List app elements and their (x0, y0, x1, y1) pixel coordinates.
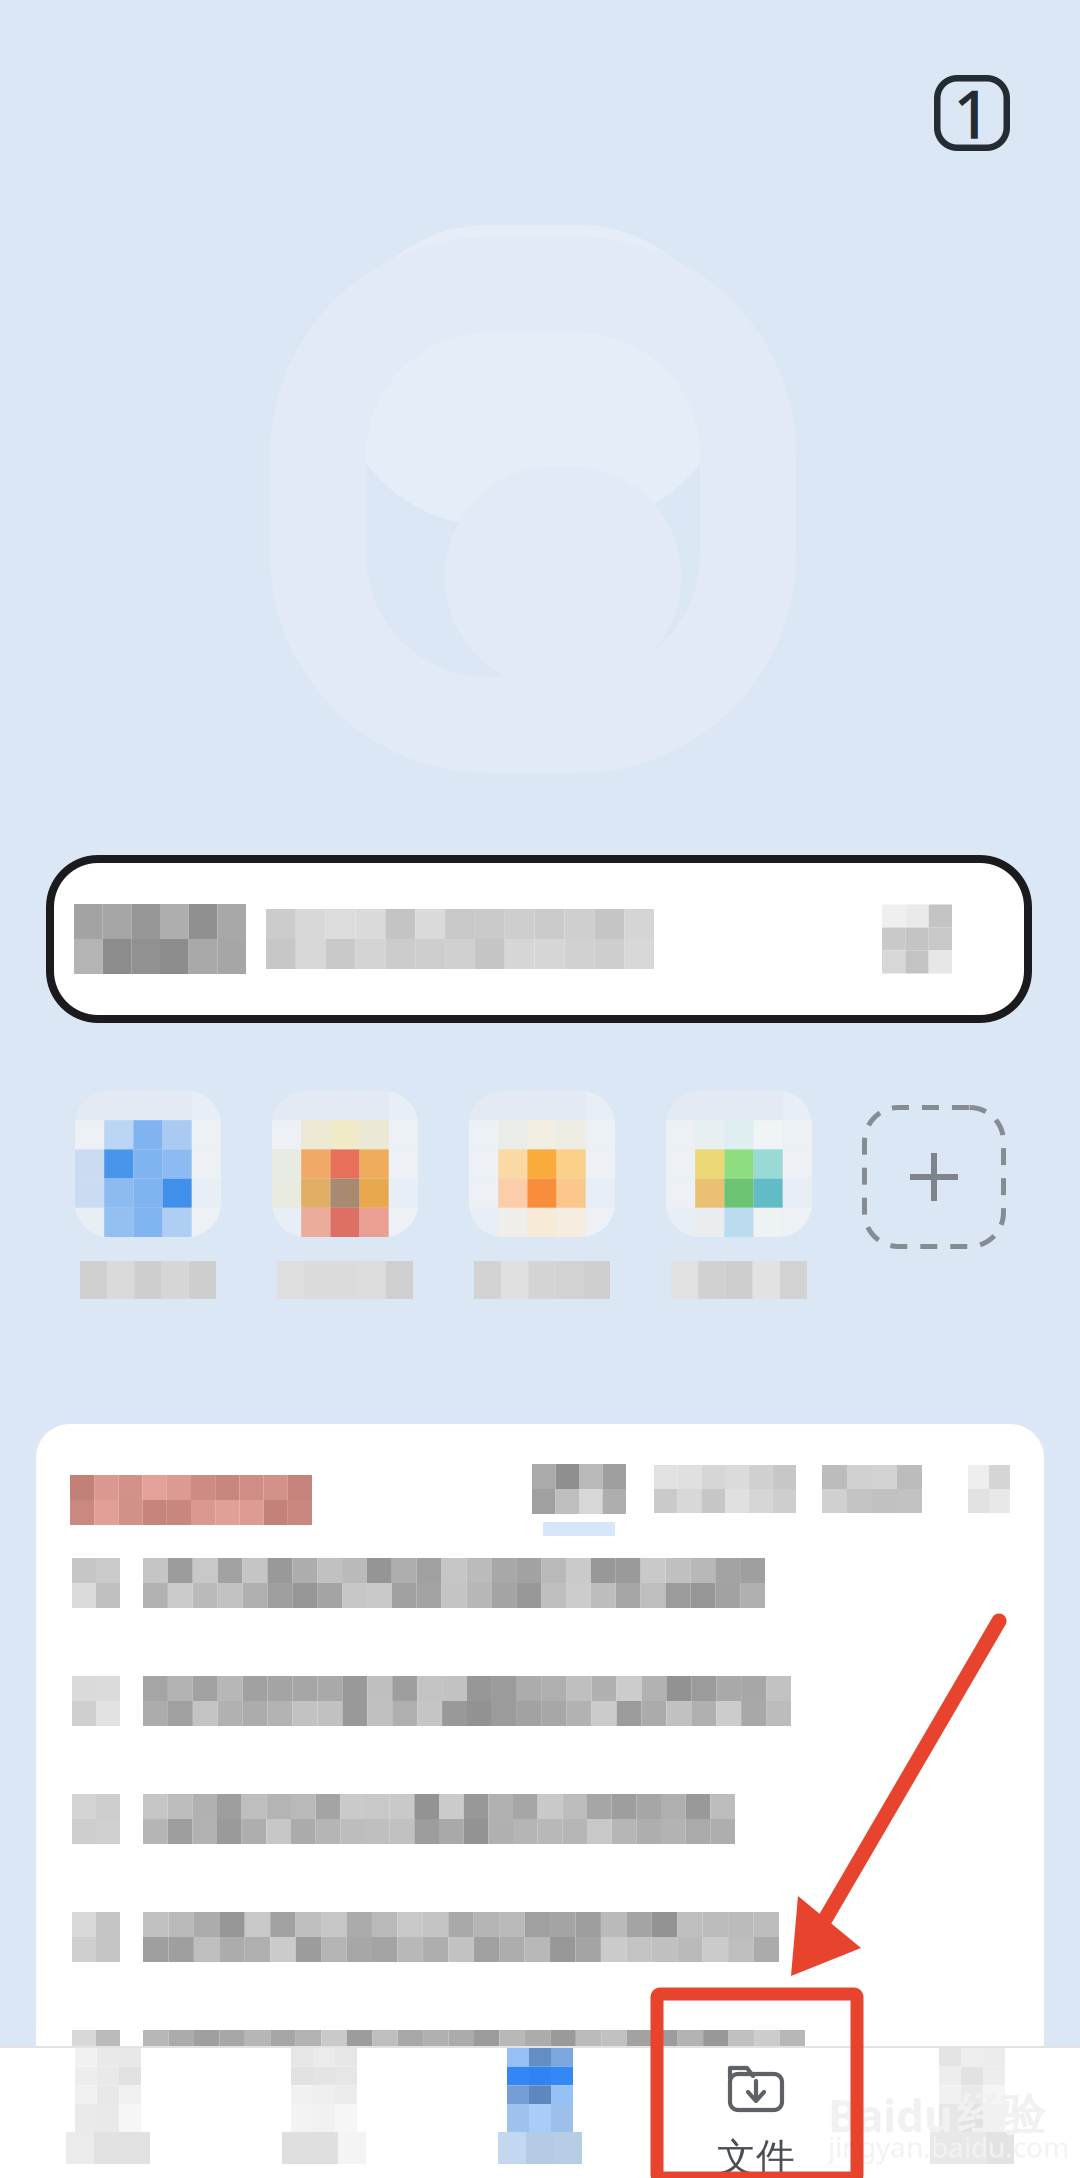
staticText: jingyan.baidu.com (828, 2128, 1069, 2165)
button[interactable]: Tab (0, 2048, 216, 2178)
button[interactable]: Tab (216, 2048, 432, 2178)
staticText: Baidu (828, 2086, 953, 2144)
button[interactable]: File row (36, 2030, 1044, 2080)
button[interactable]: Tab (864, 2048, 1080, 2178)
button[interactable]: File row (36, 1912, 1044, 1962)
button[interactable]: App shortcut (272, 1091, 469, 1299)
button[interactable]: File row (36, 1676, 1044, 1726)
staticText: 文件 (717, 2134, 795, 2178)
button[interactable]: Search (50, 859, 1028, 1019)
button[interactable]: App shortcut (666, 1091, 863, 1299)
button[interactable]: App shortcut (469, 1091, 666, 1299)
button[interactable]: 文件 (648, 2048, 864, 2178)
button[interactable]: Add shortcut (871, 1123, 1015, 1267)
button[interactable]: File row (36, 1794, 1044, 1844)
staticText: 经验 (957, 2088, 1045, 2142)
button[interactable]: Tab (432, 2048, 648, 2178)
button[interactable]: App shortcut (75, 1091, 272, 1299)
staticText: 1 (953, 69, 991, 157)
button[interactable]: File row (36, 1558, 1044, 1608)
